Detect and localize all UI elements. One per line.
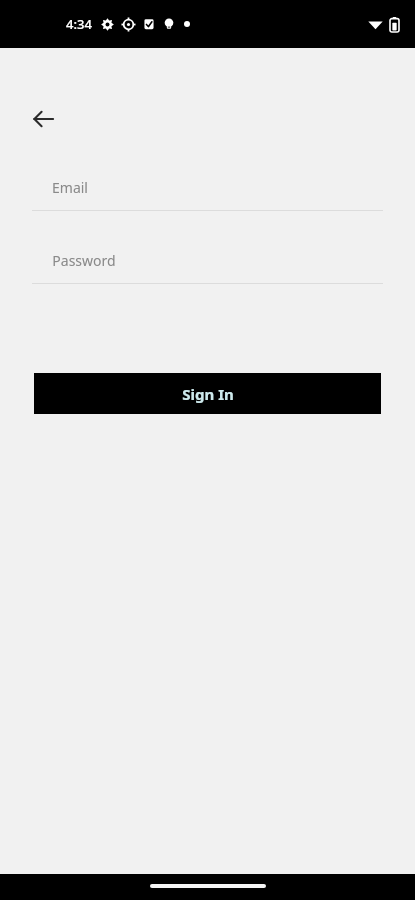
- staticText: Email: [52, 178, 88, 197]
- button[interactable]: Email: [32, 164, 383, 211]
- staticText: 4:34: [66, 15, 92, 33]
- button[interactable]: Sign In: [34, 373, 381, 414]
- staticText: Sign In: [182, 384, 234, 404]
- button[interactable]: Password: [32, 237, 383, 284]
- button[interactable]: Back: [22, 97, 66, 141]
- staticText: Password: [52, 251, 116, 270]
